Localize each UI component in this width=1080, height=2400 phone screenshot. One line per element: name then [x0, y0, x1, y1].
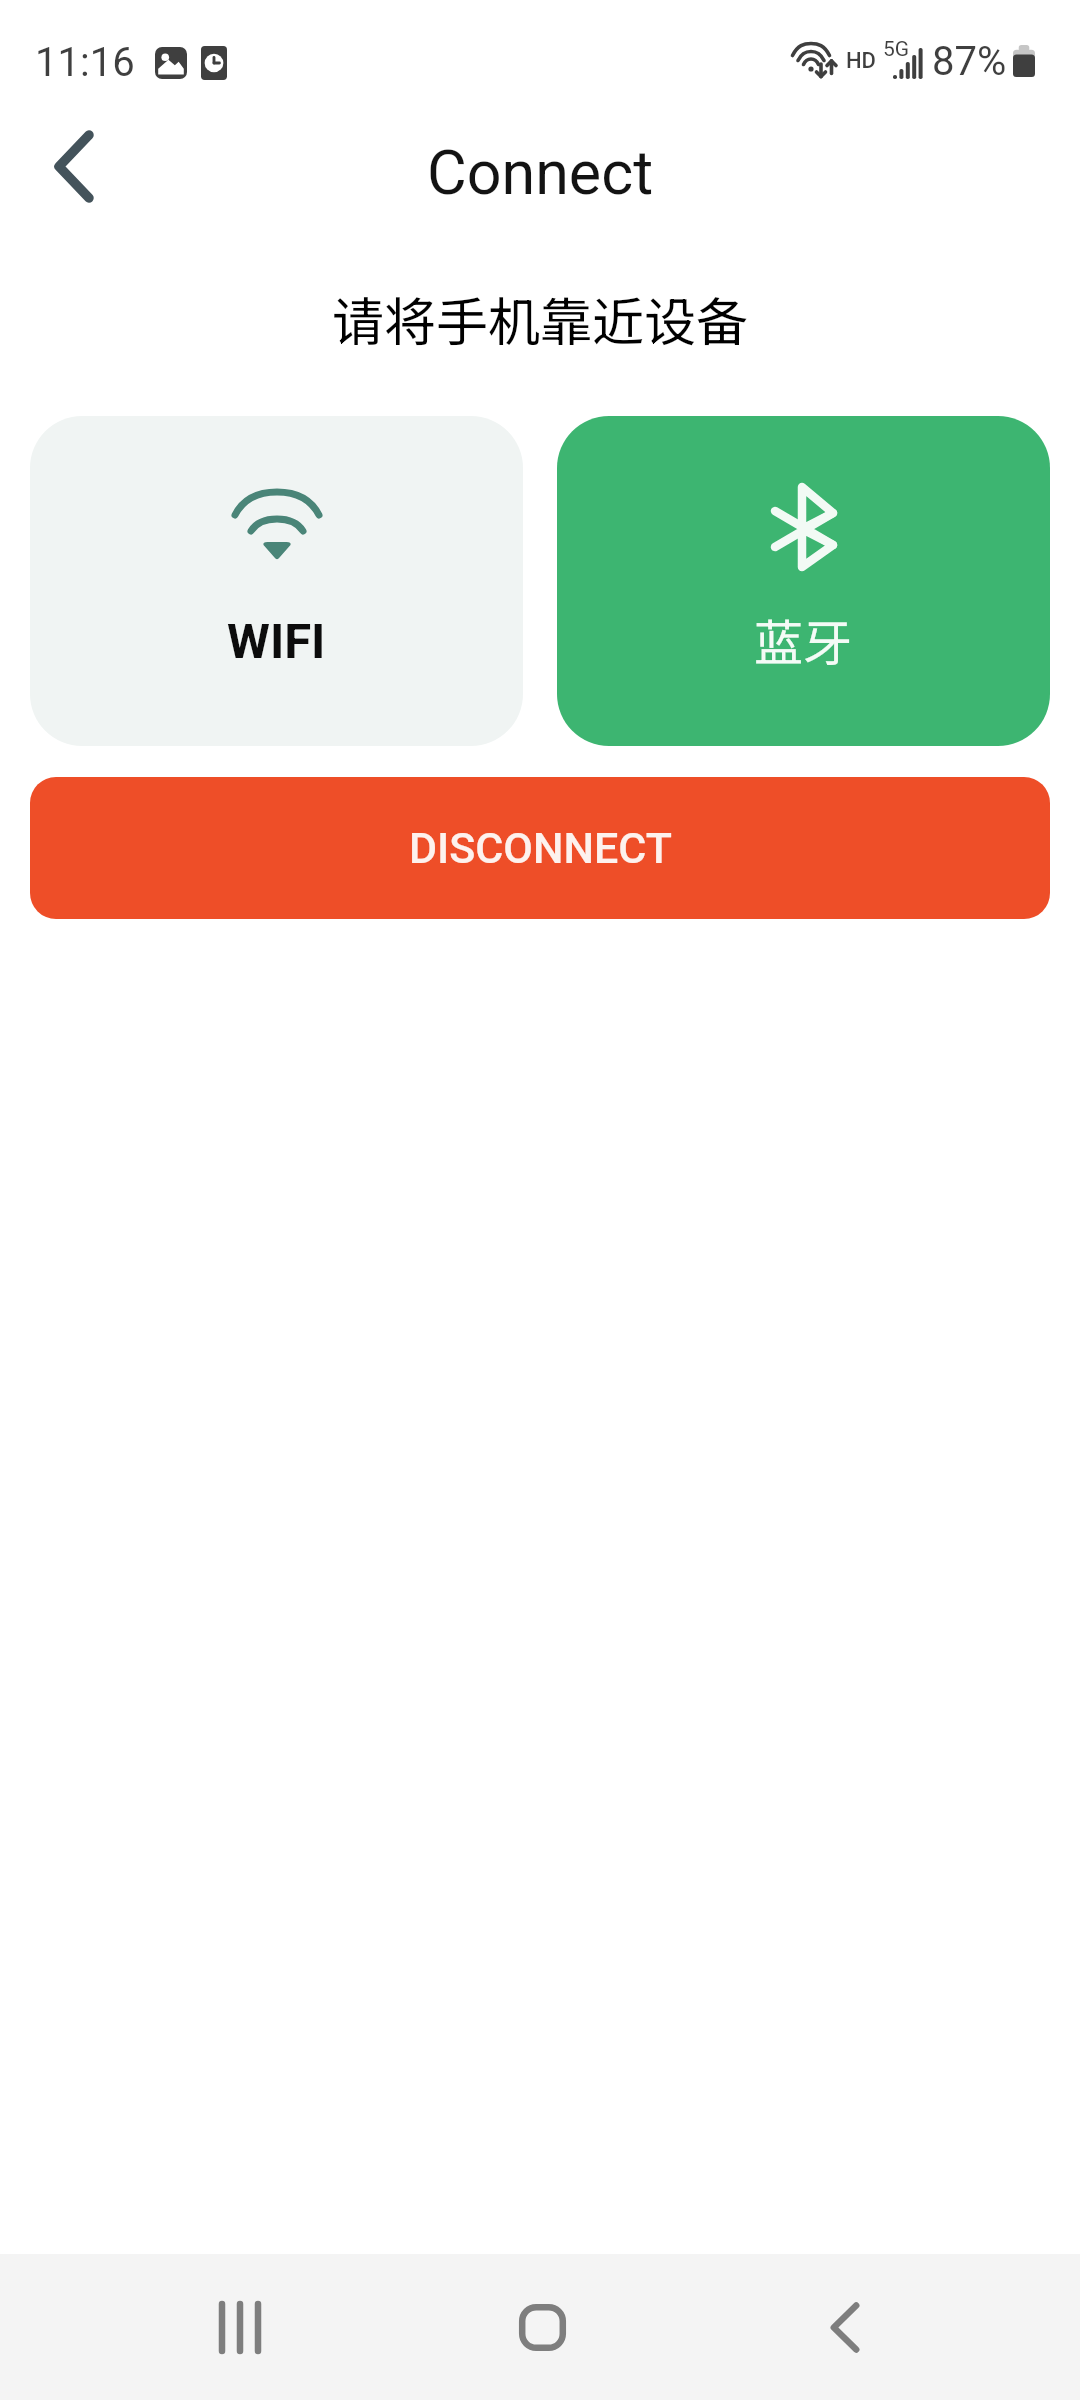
button[interactable]: DISCONNECT [30, 777, 1050, 919]
button[interactable]: WIFI [30, 416, 523, 746]
staticText: 蓝牙 [754, 604, 853, 675]
staticText: 11:16 [35, 39, 135, 86]
staticText: DISCONNECT [409, 823, 672, 873]
button[interactable]: Recent apps [165, 2277, 315, 2377]
staticText: Connect [427, 137, 654, 208]
staticText: 请将手机靠近设备 [0, 281, 1080, 356]
staticText: WIFI [227, 613, 326, 670]
staticText: HD [846, 48, 876, 74]
button[interactable]: Home [467, 2277, 617, 2377]
button[interactable]: Back [26, 118, 122, 214]
staticText: 87% [932, 38, 1007, 85]
button[interactable]: 蓝牙 [557, 416, 1050, 746]
staticText: 5G [883, 37, 910, 62]
button[interactable]: Back [770, 2277, 920, 2377]
